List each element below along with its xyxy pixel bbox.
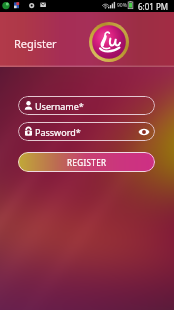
button[interactable]: REGISTER	[18, 152, 155, 172]
button[interactable]: Username*	[18, 96, 155, 115]
button[interactable]: Password*	[18, 122, 155, 141]
button[interactable]: Show password	[137, 125, 150, 138]
staticText: Password*	[35, 126, 81, 138]
button[interactable]: Logo	[89, 22, 129, 62]
staticText: 6:01 PM	[138, 1, 169, 12]
staticText: Username*	[35, 100, 84, 112]
staticText: Register	[14, 36, 57, 51]
staticText: REGISTER	[67, 157, 107, 168]
staticText: 90%	[117, 2, 127, 9]
